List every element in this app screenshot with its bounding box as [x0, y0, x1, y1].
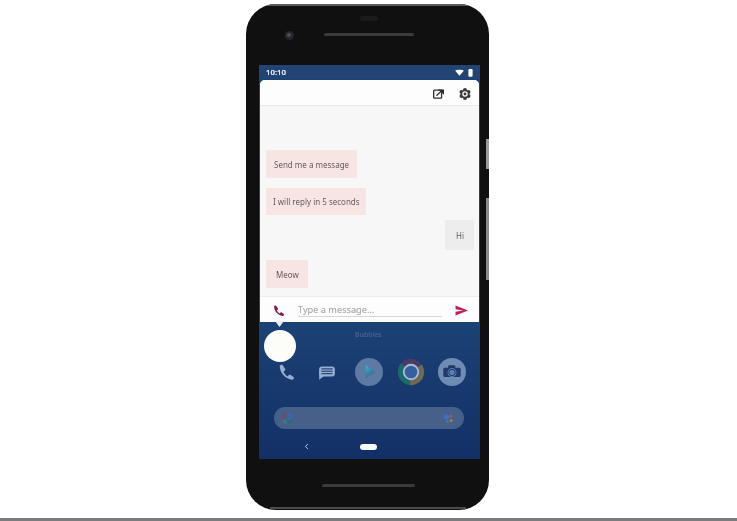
- button[interactable]: Meow: [266, 260, 308, 288]
- staticText: Meow: [276, 269, 299, 280]
- staticText: Hi: [456, 230, 464, 241]
- button[interactable]: Call: [270, 302, 286, 318]
- button[interactable]: I will reply in 5 seconds: [266, 188, 366, 215]
- button[interactable]: Send: [452, 301, 470, 319]
- staticText: 10:10: [266, 67, 286, 78]
- button[interactable]: Camera: [438, 358, 466, 386]
- staticText: Send me a message: [274, 159, 350, 170]
- button[interactable]: Phone: [272, 358, 300, 386]
- staticText: I will reply in 5 seconds: [273, 196, 360, 207]
- button[interactable]: Chat bubble: [264, 330, 296, 362]
- button[interactable]: Play Store: [355, 358, 383, 386]
- button[interactable]: Search: [274, 407, 464, 429]
- button[interactable]: Hi: [445, 220, 474, 250]
- staticText: Type a message…: [298, 303, 375, 316]
- button[interactable]: Settings: [455, 84, 475, 104]
- staticText: Bubbles: [355, 330, 382, 340]
- button[interactable]: Messages: [313, 358, 341, 386]
- button[interactable]: Send me a message: [266, 150, 357, 178]
- button[interactable]: Back: [299, 439, 313, 453]
- button[interactable]: Chrome: [397, 358, 425, 386]
- button[interactable]: Open in new window: [428, 83, 448, 103]
- button[interactable]: Home: [360, 444, 377, 450]
